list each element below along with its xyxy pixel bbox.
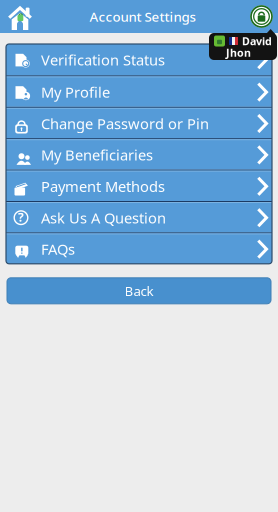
staticText: My Profile xyxy=(41,82,110,102)
button[interactable]: Verification Status xyxy=(6,44,272,75)
button[interactable]: Home xyxy=(0,0,40,33)
button[interactable]: Change Password or Pin xyxy=(6,107,272,138)
staticText: Payment Methods xyxy=(41,177,165,196)
staticText: David xyxy=(242,34,272,48)
button[interactable]: ? xyxy=(6,201,272,232)
staticText: Account Settings xyxy=(89,8,195,25)
staticText: My Beneficiaries xyxy=(41,145,153,165)
staticText: ? xyxy=(18,209,24,225)
button[interactable]: Payment Methods xyxy=(6,170,272,201)
button[interactable]: FAQs xyxy=(6,232,272,264)
button[interactable]: Log out xyxy=(245,0,278,33)
staticText: FAQs xyxy=(41,239,75,259)
staticText: Change Password or Pin xyxy=(41,114,209,133)
staticText: Jhon xyxy=(226,45,251,60)
button[interactable]: My Beneficiaries xyxy=(6,138,272,170)
button[interactable]: My Profile xyxy=(6,75,272,107)
staticText: Ask Us A Question xyxy=(41,208,166,227)
staticText: Verification Status xyxy=(41,50,165,69)
staticText: Back xyxy=(124,282,153,300)
button[interactable]: Back xyxy=(7,278,271,304)
